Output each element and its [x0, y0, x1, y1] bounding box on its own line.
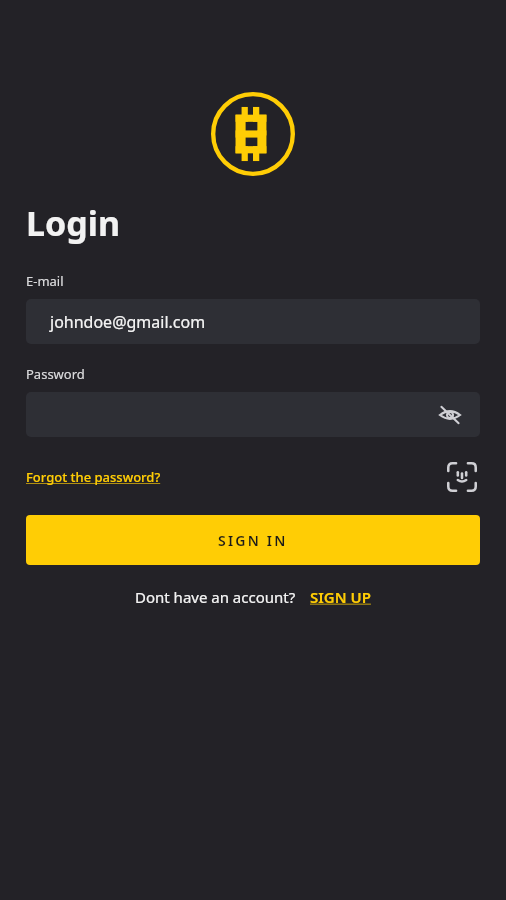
button[interactable]: Show password	[434, 399, 466, 431]
button[interactable]: Forgot the password?	[26, 464, 161, 490]
button[interactable]: SIGN UP	[310, 587, 371, 607]
staticText: Password	[26, 365, 85, 383]
staticText: Login	[26, 200, 121, 246]
button[interactable]: johndoe@gmail.com	[26, 299, 480, 344]
button[interactable]: Face ID login	[444, 459, 480, 495]
button[interactable]: Show password	[26, 392, 480, 437]
staticText: johndoe@gmail.com	[50, 311, 206, 333]
staticText: SIGN UP	[310, 587, 371, 607]
staticText: Forgot the password?	[26, 468, 161, 486]
staticText: SIGN IN	[218, 531, 288, 550]
staticText: Dont have an account?	[135, 587, 296, 607]
staticText: E-mail	[26, 272, 64, 290]
button[interactable]: SIGN IN	[26, 515, 480, 565]
